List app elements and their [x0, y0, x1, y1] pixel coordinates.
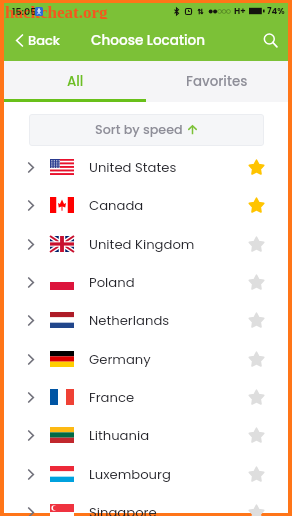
staticText: Sort by speed — [95, 121, 183, 139]
button[interactable]: United States — [4, 148, 288, 186]
staticText: H+ — [234, 5, 246, 17]
button[interactable]: Germany — [4, 340, 288, 378]
button[interactable]: Singapore — [4, 493, 288, 516]
button[interactable]: Favorite — [249, 352, 264, 367]
staticText: Netherlands — [89, 311, 249, 329]
staticText: Choose Location — [91, 31, 206, 50]
staticText: Germany — [89, 350, 249, 368]
staticText: France — [89, 388, 249, 406]
button[interactable]: Favorite — [249, 428, 264, 443]
button[interactable]: Sort by speed — [29, 114, 264, 146]
button[interactable]: Favorite — [249, 467, 264, 482]
staticText: Canada — [89, 196, 249, 214]
staticText: Lithuania — [89, 426, 249, 444]
button[interactable]: France — [4, 378, 288, 416]
button[interactable]: Poland — [4, 263, 288, 301]
button[interactable]: All — [4, 61, 146, 102]
button[interactable]: Netherlands — [4, 301, 288, 339]
button[interactable]: Back — [4, 23, 69, 57]
staticText: Favorites — [186, 72, 248, 91]
staticText: Back — [28, 31, 61, 49]
button[interactable]: Favorite — [249, 160, 264, 175]
button[interactable]: United Kingdom — [4, 225, 288, 263]
staticText: United States — [89, 158, 249, 176]
staticText: All — [67, 72, 84, 91]
button[interactable]: Favorite — [249, 505, 264, 516]
button[interactable]: Luxembourg — [4, 455, 288, 493]
button[interactable]: Favorite — [249, 313, 264, 328]
button[interactable]: Favorite — [249, 390, 264, 405]
staticText: hackcheat.org — [5, 3, 108, 19]
staticText: Luxembourg — [89, 465, 249, 483]
button[interactable]: Search — [256, 26, 284, 54]
staticText: Poland — [89, 273, 249, 291]
staticText: United Kingdom — [89, 235, 249, 253]
button[interactable]: Favorites — [146, 61, 288, 102]
staticText: Singapore — [89, 503, 249, 516]
button[interactable]: Lithuania — [4, 416, 288, 454]
button[interactable]: Canada — [4, 186, 288, 224]
button[interactable]: Favorite — [249, 237, 264, 252]
staticText: 15:05 — [12, 5, 37, 18]
button[interactable]: Favorite — [249, 275, 264, 290]
button[interactable]: Favorite — [249, 198, 264, 213]
staticText: 74% — [267, 5, 285, 17]
